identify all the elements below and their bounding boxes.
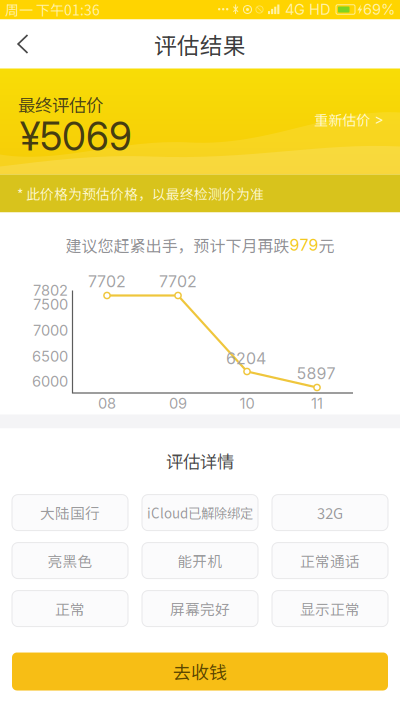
button[interactable]: Back	[0, 19, 46, 68]
button[interactable]: 32G	[272, 495, 388, 531]
staticText: 69%	[363, 1, 395, 18]
button[interactable]: 正常通话	[272, 543, 388, 579]
staticText: 7702	[159, 272, 197, 291]
button[interactable]: 正常	[12, 591, 128, 627]
button[interactable]: 亮黑色	[12, 543, 128, 579]
staticText: 显示正常	[300, 598, 360, 619]
staticText: 7000	[33, 322, 68, 339]
staticText: 正常	[55, 598, 85, 619]
button[interactable]: 重新估价	[300, 102, 399, 136]
staticText: 6204	[226, 349, 266, 368]
button[interactable]: 显示正常	[272, 591, 388, 627]
staticText: 11	[311, 395, 323, 412]
staticText: 32G	[317, 502, 343, 523]
staticText: 4G HD	[285, 1, 331, 18]
staticText: ¥5069	[20, 113, 132, 160]
staticText: 最终评估价	[18, 92, 103, 117]
staticText: 6500	[32, 348, 68, 365]
staticText: 大陆国行	[40, 502, 100, 523]
staticText: 元	[318, 233, 334, 256]
staticText: 亮黑色	[47, 550, 92, 571]
button[interactable]: 去收钱	[12, 652, 388, 690]
staticText: 能开机	[177, 550, 222, 571]
staticText: 正常通话	[300, 550, 360, 571]
staticText: 979	[289, 235, 318, 255]
staticText: >	[374, 111, 383, 128]
staticText: 10	[239, 395, 254, 412]
button[interactable]: 大陆国行	[12, 495, 128, 531]
staticText: * 此价格为预估价格，以最终检测价为准	[17, 184, 264, 203]
button[interactable]: iCloud已解除绑定	[142, 495, 258, 531]
staticText: 评估结果	[154, 28, 246, 60]
staticText: 重新估价	[314, 109, 370, 130]
button[interactable]: 屏幕完好	[142, 591, 258, 627]
staticText: 7500	[33, 296, 68, 313]
staticText: 08	[98, 395, 116, 412]
staticText: 6000	[32, 373, 68, 390]
staticText: 屏幕完好	[170, 598, 230, 619]
staticText: 评估详情	[166, 448, 234, 474]
staticText: 7802	[33, 282, 68, 299]
staticText: 09	[169, 395, 187, 412]
staticText: 5897	[296, 364, 335, 383]
button[interactable]: 能开机	[142, 543, 258, 579]
staticText: 建议您赶紧出手，预计下月再跌	[65, 233, 289, 256]
staticText: 去收钱	[173, 658, 227, 685]
staticText: 周一 下午01:36	[5, 0, 100, 20]
staticText: iCloud已解除绑定	[147, 503, 253, 522]
staticText: 7702	[88, 272, 126, 291]
